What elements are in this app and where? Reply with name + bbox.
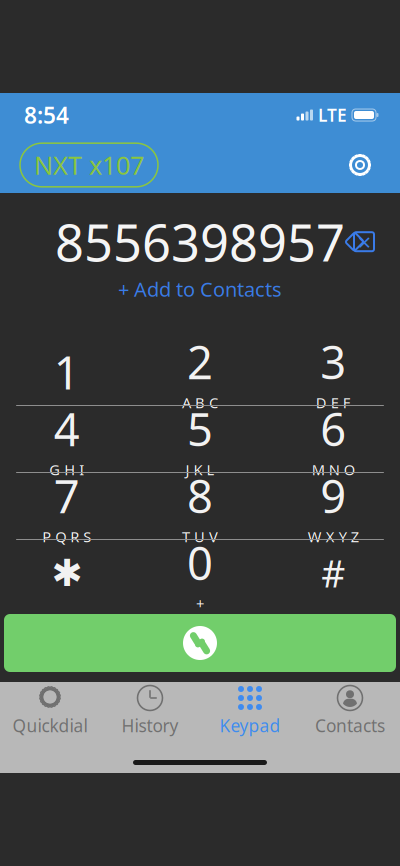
button[interactable]: History	[100, 686, 200, 736]
staticText: 4	[54, 399, 80, 459]
staticText: J K L	[185, 460, 214, 479]
staticText: G H I	[49, 460, 84, 479]
button[interactable]: 5	[133, 406, 267, 472]
staticText: W X Y Z	[308, 527, 359, 546]
button[interactable]: 0	[133, 540, 267, 606]
staticText: 8	[187, 466, 213, 526]
staticText: D E F	[316, 393, 351, 412]
staticText: 7	[54, 466, 80, 526]
button[interactable]: Call	[4, 614, 396, 672]
staticText: Keypad	[219, 714, 280, 737]
button[interactable]: NXT x107	[20, 143, 158, 187]
button[interactable]: Delete	[338, 222, 384, 262]
staticText: T U V	[182, 527, 218, 546]
button[interactable]: 2	[133, 339, 267, 405]
staticText: LTE	[318, 103, 347, 126]
button[interactable]: Keypad	[200, 686, 300, 736]
button[interactable]: 1	[0, 339, 133, 405]
button[interactable]: 3	[267, 339, 400, 405]
staticText: History	[121, 714, 178, 737]
button[interactable]: + Add to Contacts	[108, 270, 292, 308]
button[interactable]: Settings	[340, 145, 380, 185]
staticText: 2	[187, 332, 213, 392]
staticText: +	[196, 594, 204, 613]
button[interactable]: Contacts	[300, 686, 400, 736]
staticText: 9	[320, 466, 346, 526]
button[interactable]: Quickdial	[0, 686, 100, 736]
button[interactable]: 6	[267, 406, 400, 472]
staticText: ×	[357, 226, 371, 258]
staticText: 8556398957	[55, 208, 345, 275]
staticText: #	[321, 548, 345, 598]
staticText: + Add to Contacts	[118, 276, 282, 302]
staticText: 0	[187, 533, 213, 593]
staticText: 6	[320, 399, 346, 459]
button[interactable]: ✱	[0, 540, 133, 606]
staticText: 3	[320, 332, 346, 392]
staticText: M N O	[312, 460, 355, 479]
staticText: 5	[187, 399, 213, 459]
button[interactable]: #	[267, 540, 400, 606]
staticText: 8:54	[24, 100, 69, 130]
staticText: Quickdial	[12, 714, 87, 737]
staticText: Contacts	[315, 714, 385, 737]
button[interactable]: 9	[267, 473, 400, 539]
staticText: P Q R S	[42, 527, 91, 546]
staticText: ✱	[51, 552, 82, 594]
staticText: NXT x107	[34, 148, 144, 182]
button[interactable]: 7	[0, 473, 133, 539]
staticText: A B C	[182, 393, 218, 412]
staticText: 1	[54, 342, 80, 402]
button[interactable]: 8	[133, 473, 267, 539]
button[interactable]: 4	[0, 406, 133, 472]
